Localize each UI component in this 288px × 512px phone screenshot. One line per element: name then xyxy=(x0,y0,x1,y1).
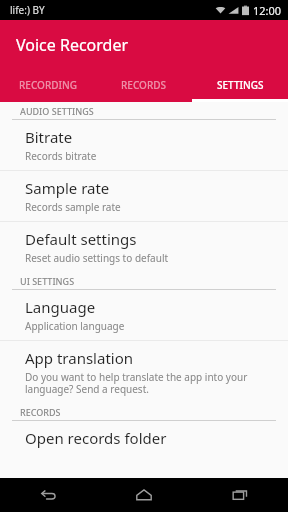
staticText: Language xyxy=(25,297,96,317)
staticText: Sample rate xyxy=(25,178,110,198)
button[interactable]: App translation xyxy=(0,341,288,403)
button[interactable]: Bitrate xyxy=(0,120,288,170)
staticText: Records bitrate xyxy=(25,149,97,163)
staticText: Do you want to help translate the app in… xyxy=(25,370,274,396)
button[interactable]: Back xyxy=(0,478,96,512)
staticText: Bitrate xyxy=(25,127,73,147)
staticText: 12:00 xyxy=(253,3,282,18)
staticText: UI SETTINGS xyxy=(20,275,75,287)
button[interactable]: Sample rate xyxy=(0,171,288,221)
staticText: SETTINGS xyxy=(217,78,264,92)
staticText: Voice Recorder xyxy=(16,34,129,56)
staticText: RECORDS xyxy=(20,406,61,418)
staticText: RECORDS xyxy=(121,78,167,92)
button[interactable]: SETTINGS xyxy=(192,70,288,99)
button[interactable]: Home xyxy=(96,478,192,512)
staticText: Records sample rate xyxy=(25,200,121,214)
staticText: Application language xyxy=(25,319,125,333)
staticText: life:) BY xyxy=(10,3,45,17)
button[interactable]: RECORDING xyxy=(0,70,96,99)
button[interactable]: Recent apps xyxy=(192,478,288,512)
staticText: Open records folder xyxy=(25,428,167,448)
staticText: Default settings xyxy=(25,229,137,249)
staticText: Reset audio settings to default xyxy=(25,251,169,265)
staticText: RECORDING xyxy=(19,78,78,92)
button[interactable]: RECORDS xyxy=(96,70,192,99)
button[interactable]: Language xyxy=(0,290,288,340)
staticText: AUDIO SETTINGS xyxy=(20,105,94,117)
staticText: App translation xyxy=(25,348,134,368)
button[interactable]: Open records folder xyxy=(0,421,288,455)
button[interactable]: Default settings xyxy=(0,222,288,272)
